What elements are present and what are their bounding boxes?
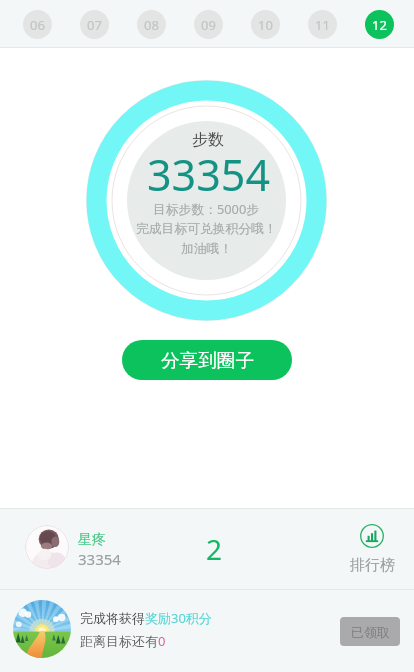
staticText: 已领取 xyxy=(351,624,390,640)
staticText: 完成目标可兑换积分哦！ xyxy=(136,221,277,237)
staticText: 07 xyxy=(87,16,102,34)
staticText: 06 xyxy=(30,16,45,34)
staticText: 加油哦！ xyxy=(181,241,233,257)
staticText: 排行榜 xyxy=(350,556,395,575)
button[interactable]: 星疼 xyxy=(0,509,414,589)
button[interactable]: 11 xyxy=(308,10,337,39)
button[interactable]: 排行榜 xyxy=(339,524,405,575)
staticText: 12 xyxy=(372,16,387,34)
button[interactable]: 10 xyxy=(251,10,280,39)
button[interactable]: 06 xyxy=(23,10,52,39)
staticText: 步数 xyxy=(192,130,224,150)
button[interactable]: 07 xyxy=(80,10,109,39)
staticText: 33354 xyxy=(147,145,270,204)
button[interactable]: 09 xyxy=(194,10,223,39)
staticText: 星疼 xyxy=(78,531,106,549)
staticText: 完成将获得奖励30积分 xyxy=(80,609,212,627)
staticText: 08 xyxy=(144,16,159,34)
staticText: 11 xyxy=(315,16,330,34)
staticText: 09 xyxy=(201,16,216,34)
button[interactable]: 12 xyxy=(365,10,394,39)
staticText: 33354 xyxy=(78,549,121,569)
button[interactable]: 完成将获得奖励30积分 xyxy=(0,590,414,672)
staticText: 10 xyxy=(258,16,273,34)
staticText: 2 xyxy=(206,530,223,568)
staticText: 距离目标还有0 xyxy=(80,632,166,650)
staticText: 目标步数：5000步 xyxy=(153,200,260,217)
staticText: 分享到圈子 xyxy=(161,349,254,372)
button[interactable]: 已领取 xyxy=(340,617,400,646)
button[interactable]: 分享到圈子 xyxy=(122,340,292,380)
button[interactable]: 08 xyxy=(137,10,166,39)
